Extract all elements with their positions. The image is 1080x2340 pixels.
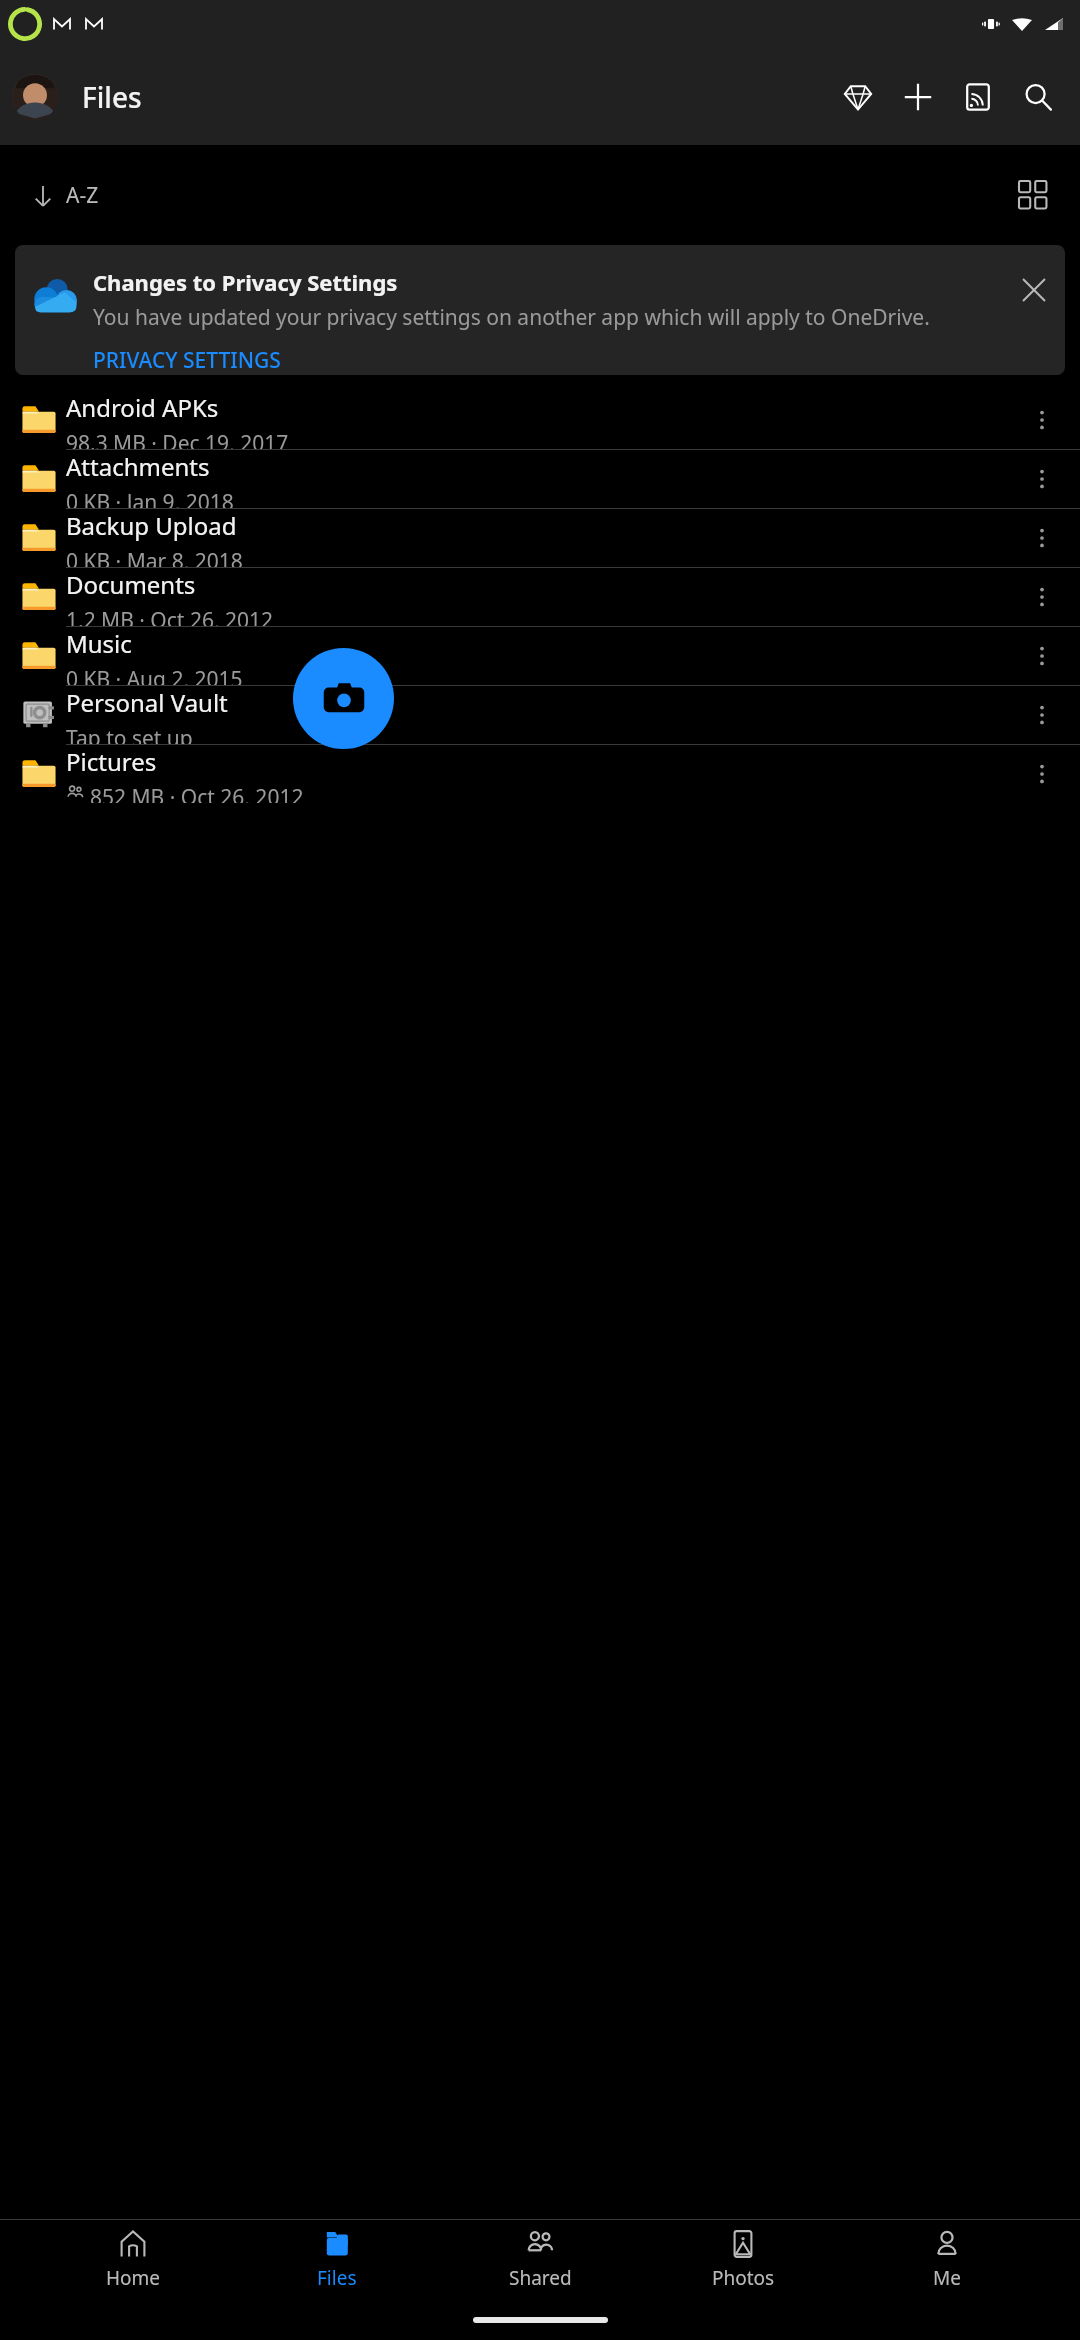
staticText: PRIVACY SETTINGS [93,346,281,375]
button[interactable]: More options for Android APKs [1016,394,1068,446]
button[interactable]: Music [0,627,1080,685]
staticText: 0 KB · Jan 9, 2018 [66,488,234,508]
button[interactable]: More options for Personal Vault [1016,689,1068,741]
staticText: Changes to Privacy Settings [93,267,398,297]
button[interactable]: Changes to Privacy Settings [15,245,1065,375]
button[interactable]: Photos [673,2225,813,2295]
button[interactable]: Me [877,2225,1017,2295]
button[interactable]: Backup Upload [0,509,1080,567]
staticText: Files [82,78,142,116]
staticText: Android APKs [66,391,219,424]
staticText: Home [106,2265,161,2291]
button[interactable]: Account [12,74,58,120]
staticText: Photos [712,2265,775,2291]
button[interactable]: Shared [470,2225,610,2295]
button[interactable]: Switch to grid view [1006,168,1060,222]
staticText: 1.2 MB · Oct 26, 2012 [66,606,274,626]
button[interactable]: More options for Music [1016,630,1068,682]
staticText: Personal Vault [66,686,228,719]
staticText: Me [933,2265,961,2291]
button[interactable]: Search [1008,67,1068,127]
staticText: 0 KB · Aug 2, 2015 [66,665,243,685]
button[interactable]: More options for Pictures [1016,748,1068,800]
button[interactable]: PRIVACY SETTINGS [93,346,281,375]
button[interactable]: Add [888,67,948,127]
button[interactable]: More options for Attachments [1016,453,1068,505]
button[interactable]: Attachments [0,450,1080,508]
button[interactable]: Premium [828,67,888,127]
button[interactable]: Dismiss [1011,267,1057,313]
staticText: 852 MB · Oct 26, 2012 [90,783,304,803]
staticText: Music [66,627,132,660]
button[interactable]: More options for Backup Upload [1016,512,1068,564]
staticText: Documents [66,568,196,601]
staticText: You have updated your privacy settings o… [93,303,930,332]
button[interactable]: Home [63,2225,203,2295]
staticText: Files [317,2265,357,2291]
staticText: Backup Upload [66,509,237,542]
staticText: 0 KB · Mar 8, 2018 [66,547,243,567]
staticText: 98.3 MB · Dec 19, 2017 [66,429,289,449]
button[interactable]: Cast [948,67,1008,127]
button[interactable]: Android APKs [0,391,1080,449]
staticText: A-Z [66,181,99,210]
button[interactable]: Take photo [293,648,394,749]
button[interactable]: Personal Vault [0,686,1080,744]
staticText: Tap to set up [66,724,193,744]
button[interactable]: Documents [0,568,1080,626]
staticText: Pictures [66,745,157,778]
button[interactable]: A-Z [24,175,105,216]
button[interactable]: Files [267,2225,407,2295]
staticText: Shared [509,2265,572,2291]
staticText: Attachments [66,450,210,483]
button[interactable]: More options for Documents [1016,571,1068,623]
button[interactable]: Pictures [0,745,1080,803]
